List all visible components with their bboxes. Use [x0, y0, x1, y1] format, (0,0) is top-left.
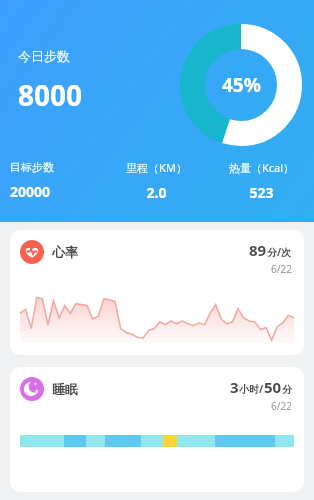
staticText: 睡眠 — [52, 381, 78, 397]
staticText: 523 — [209, 183, 314, 202]
staticText: 目标步数 — [10, 160, 104, 174]
staticText: 6/22 — [271, 262, 292, 276]
staticText: 今日步数 — [18, 48, 70, 64]
staticText: 89 — [249, 240, 267, 260]
staticText: 里程（KM） — [104, 160, 209, 175]
staticText: 小时/ — [239, 382, 264, 396]
button[interactable]: Sleep — [10, 367, 304, 492]
staticText: 20000 — [10, 182, 104, 201]
staticText: 6/22 — [271, 399, 292, 413]
staticText: 3 — [230, 377, 239, 397]
other: Heart rate — [20, 240, 44, 264]
staticText: 热量（Kcal） — [209, 160, 314, 175]
staticText: 45% — [222, 72, 261, 98]
staticText: 50 — [264, 377, 282, 397]
staticText: 8000 — [18, 76, 83, 114]
staticText: 分 — [282, 383, 292, 396]
button[interactable]: Heart rate — [10, 230, 304, 355]
other: Sleep — [20, 377, 44, 401]
staticText: 分/次 — [267, 245, 292, 259]
staticText: 2.0 — [104, 183, 209, 202]
staticText: 心率 — [52, 244, 78, 260]
